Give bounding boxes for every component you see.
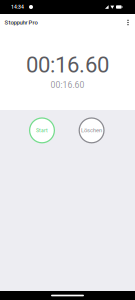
staticText: Stoppuhr Pro <box>5 19 38 26</box>
staticText: Löschen <box>81 127 102 134</box>
staticText: 00:16.60 <box>50 80 84 90</box>
button[interactable]: Start <box>30 118 54 143</box>
staticText: 14:34 <box>11 4 24 10</box>
staticText: Start <box>36 127 48 133</box>
staticText: 00:16.60 <box>26 52 109 78</box>
button[interactable]: Löschen <box>79 118 104 143</box>
button[interactable]: More options <box>121 14 135 31</box>
